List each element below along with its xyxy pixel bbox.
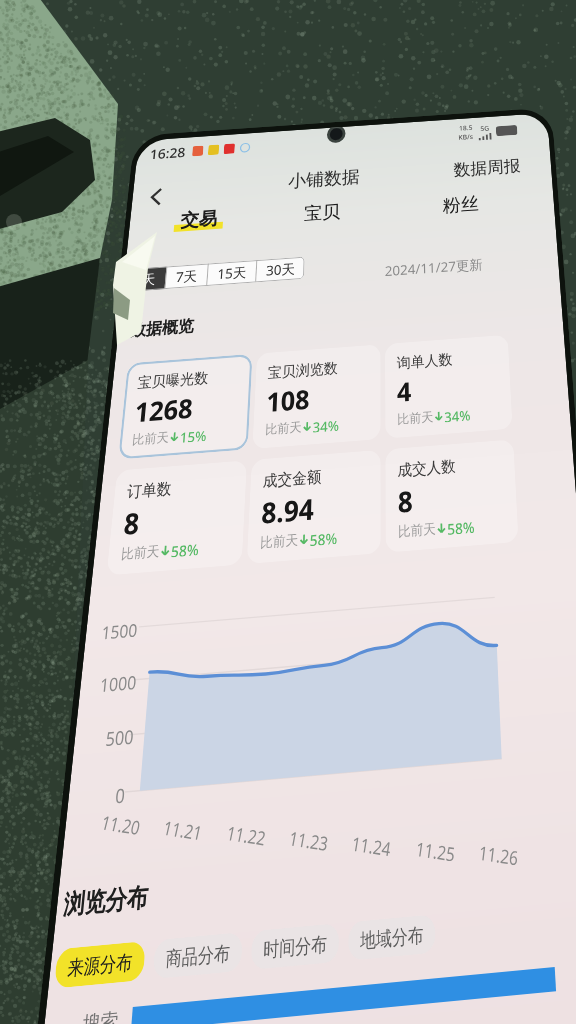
staticText: 交易 <box>180 207 218 232</box>
staticText: 0 <box>114 781 127 810</box>
staticText: 宝贝 <box>304 201 340 226</box>
button[interactable]: 商品分布 <box>152 932 243 979</box>
button[interactable]: 小铺数据 <box>288 166 360 193</box>
button[interactable]: 宝贝 <box>298 197 346 229</box>
staticText: 34% <box>444 405 471 422</box>
button[interactable]: 1天 <box>124 266 166 292</box>
staticText: 4 <box>397 373 412 409</box>
staticText: 来源分布 <box>67 949 133 980</box>
button[interactable]: 宝贝曝光数 <box>118 354 253 460</box>
button[interactable]: 15天 <box>207 260 256 286</box>
staticText: 小铺数据 <box>288 166 360 193</box>
staticText: 比前天 <box>132 429 170 447</box>
staticText: 成交金额 <box>262 466 322 490</box>
staticText: 500 <box>104 723 135 752</box>
button[interactable]: 30天 <box>256 256 305 282</box>
staticText: 比前天 <box>398 520 436 539</box>
staticText: 8 <box>122 502 142 542</box>
button[interactable]: 地域分布 <box>348 914 436 961</box>
staticText: 浏览分布 <box>62 882 149 922</box>
staticText: 15% <box>179 426 207 443</box>
staticText: 8.94 <box>261 489 314 531</box>
button[interactable]: 宝贝浏览数 <box>252 344 381 449</box>
button[interactable]: 交易 <box>168 204 229 236</box>
staticText: 订单数 <box>126 478 172 501</box>
staticText: 11.20 <box>98 806 144 843</box>
staticText: 比前天 <box>260 531 298 550</box>
staticText: 5G <box>480 124 490 134</box>
button[interactable]: 7天 <box>165 263 208 289</box>
staticText: 2024/11/27更新 <box>385 255 484 280</box>
staticText: 30天 <box>266 259 295 280</box>
staticText: 8 <box>398 481 414 520</box>
staticText: 商品分布 <box>165 940 231 971</box>
staticText: 11.21 <box>160 811 206 849</box>
staticText: 数据概览 <box>129 316 195 341</box>
button[interactable]: 订单数 <box>106 460 247 576</box>
staticText: 询单人数 <box>397 350 453 372</box>
staticText: 11.26 <box>477 836 521 874</box>
staticText: 比前天 <box>265 418 302 436</box>
staticText: 时间分布 <box>263 931 327 962</box>
staticText: 34% <box>312 416 339 433</box>
staticText: 16:28 <box>149 143 186 163</box>
staticText: 11.25 <box>414 832 458 870</box>
staticText: 108 <box>266 380 311 419</box>
staticText: 比前天 <box>120 542 160 561</box>
button[interactable]: 询单人数 <box>385 335 513 439</box>
staticText: 成交人数 <box>397 456 456 479</box>
staticText: 58% <box>171 539 200 557</box>
staticText: 宝贝曝光数 <box>137 368 209 391</box>
staticText: KB/s <box>458 132 474 143</box>
staticText: 11.22 <box>224 816 269 854</box>
button[interactable]: 粉丝 <box>437 190 484 221</box>
staticText: 7天 <box>175 266 198 286</box>
staticText: 58% <box>447 516 475 535</box>
staticText: 搜索 <box>81 1007 119 1024</box>
staticText: 11.24 <box>350 827 393 865</box>
staticText: 宝贝浏览数 <box>267 358 338 381</box>
staticText: 1500 <box>100 618 139 645</box>
button[interactable]: 来源分布 <box>54 941 146 988</box>
button[interactable]: 成交人数 <box>385 439 519 553</box>
staticText: 11.23 <box>287 821 331 859</box>
staticText: 15天 <box>217 263 247 283</box>
staticText: 1268 <box>133 389 194 429</box>
button[interactable]: Back <box>137 179 174 214</box>
staticText: 地域分布 <box>360 922 424 953</box>
staticText: 1天 <box>133 269 157 289</box>
staticText: 1000 <box>99 669 138 698</box>
staticText: 18.5 <box>459 123 473 133</box>
staticText: 粉丝 <box>442 193 479 218</box>
staticText: 比前天 <box>397 408 433 426</box>
staticText: 58% <box>309 527 337 546</box>
button[interactable]: 成交金额 <box>246 450 381 564</box>
button[interactable]: 数据周报 <box>453 156 521 180</box>
button[interactable]: 时间分布 <box>250 923 339 970</box>
staticText: 数据周报 <box>453 156 521 180</box>
